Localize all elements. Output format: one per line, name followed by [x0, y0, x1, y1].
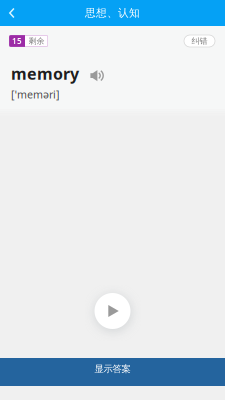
staticText: [ˈmeməri] — [11, 87, 60, 101]
staticText: 15 — [12, 36, 22, 46]
button[interactable]: 显示答案 — [0, 358, 225, 386]
staticText: 纠错 — [191, 36, 207, 46]
staticText: memory — [11, 63, 79, 84]
button[interactable]: Pronounce — [90, 66, 106, 82]
button[interactable]: Back — [0, 0, 24, 26]
button[interactable]: 纠错 — [184, 35, 215, 47]
button[interactable]: 15 — [9, 35, 48, 47]
staticText: 显示答案 — [94, 363, 130, 375]
button[interactable]: Play audio — [90, 289, 134, 333]
staticText: 剩余 — [28, 36, 44, 46]
staticText: 思想、认知 — [85, 6, 140, 19]
